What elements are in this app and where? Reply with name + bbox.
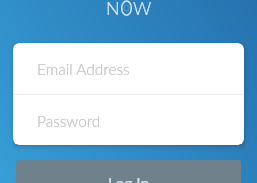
staticText: N bbox=[106, 0, 120, 19]
staticText: W bbox=[133, 0, 152, 19]
button[interactable]: Log In bbox=[16, 160, 241, 183]
other: NOW logo bbox=[0, 0, 257, 22]
staticText: Email Address bbox=[37, 60, 130, 79]
button[interactable]: Password bbox=[13, 95, 244, 145]
staticText: Log In bbox=[108, 174, 150, 183]
staticText: Password bbox=[37, 112, 101, 131]
button[interactable]: Email Address bbox=[13, 43, 244, 94]
